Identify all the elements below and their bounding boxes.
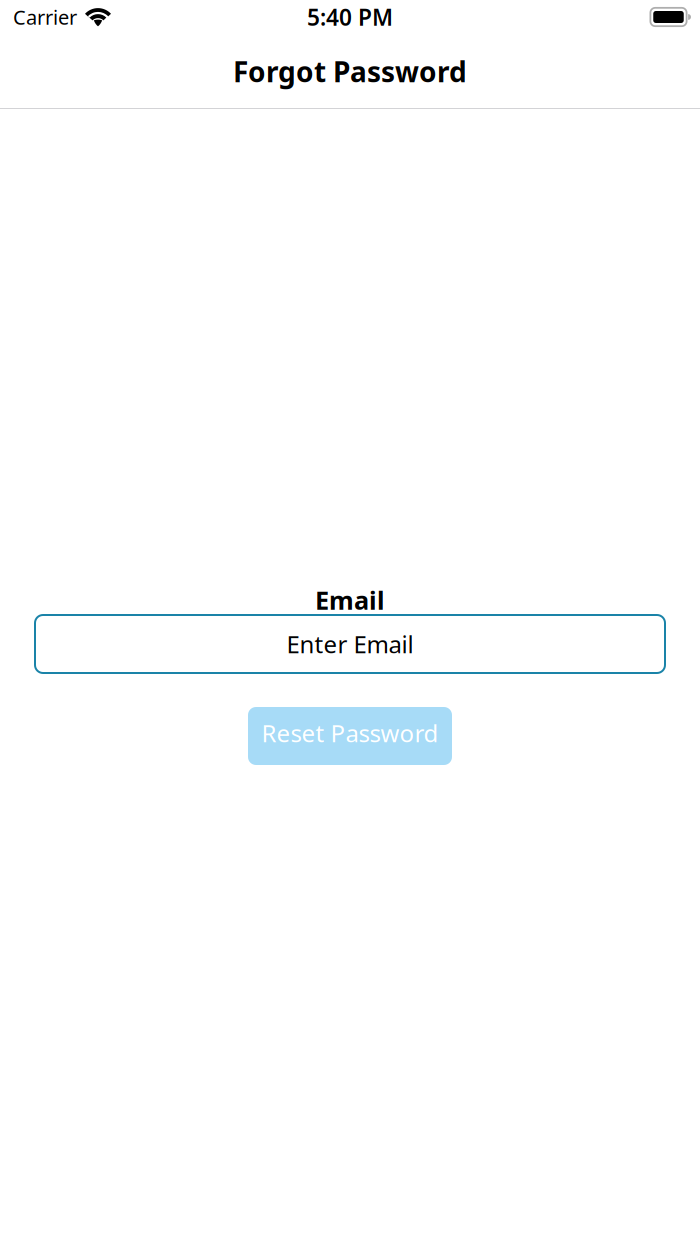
staticText: Enter Email [286,628,413,660]
button[interactable]: Reset Password [248,707,452,765]
staticText: 5:40 PM [307,2,393,32]
staticText: Reset Password [261,717,438,749]
staticText: Forgot Password [233,53,467,90]
button[interactable]: Enter Email [35,615,665,673]
staticText: Email [315,583,385,617]
staticText: Carrier [13,4,77,30]
